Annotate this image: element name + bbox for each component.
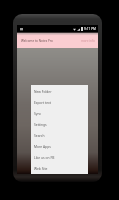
button[interactable]: Sync xyxy=(31,107,88,118)
staticText: Settings xyxy=(34,122,47,126)
staticText: Web Site xyxy=(34,166,48,170)
staticText: Welcome to Notes Pro xyxy=(21,39,53,43)
staticText: New Folder xyxy=(34,89,52,93)
staticText: More Apps xyxy=(34,144,51,148)
button[interactable]: New Folder xyxy=(31,85,88,96)
button[interactable]: Like us on FB xyxy=(31,151,88,162)
staticText: 9:11 PM xyxy=(84,27,96,31)
button[interactable]: Search xyxy=(31,129,88,140)
staticText: Search xyxy=(34,133,45,137)
button[interactable]: Export text xyxy=(31,96,88,107)
staticText: Export text xyxy=(34,100,51,104)
button[interactable]: Web Site xyxy=(31,162,88,173)
staticText: more info xyxy=(81,39,95,43)
button[interactable]: Settings xyxy=(31,118,88,129)
staticText: Like us on FB xyxy=(34,155,55,159)
button[interactable]: More Apps xyxy=(31,140,88,151)
staticText: Sync xyxy=(34,111,42,115)
